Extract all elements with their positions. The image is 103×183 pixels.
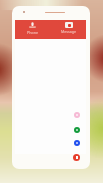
staticText: Message: [61, 29, 76, 34]
button[interactable]: Message: [50, 20, 86, 39]
button[interactable]: Phone: [15, 20, 50, 39]
button[interactable]: Close menu: [73, 154, 80, 161]
button[interactable]: Edit contact: [74, 112, 80, 118]
button[interactable]: Call: [74, 127, 80, 133]
button[interactable]: Send message: [74, 140, 80, 146]
staticText: Phone: [27, 30, 38, 35]
